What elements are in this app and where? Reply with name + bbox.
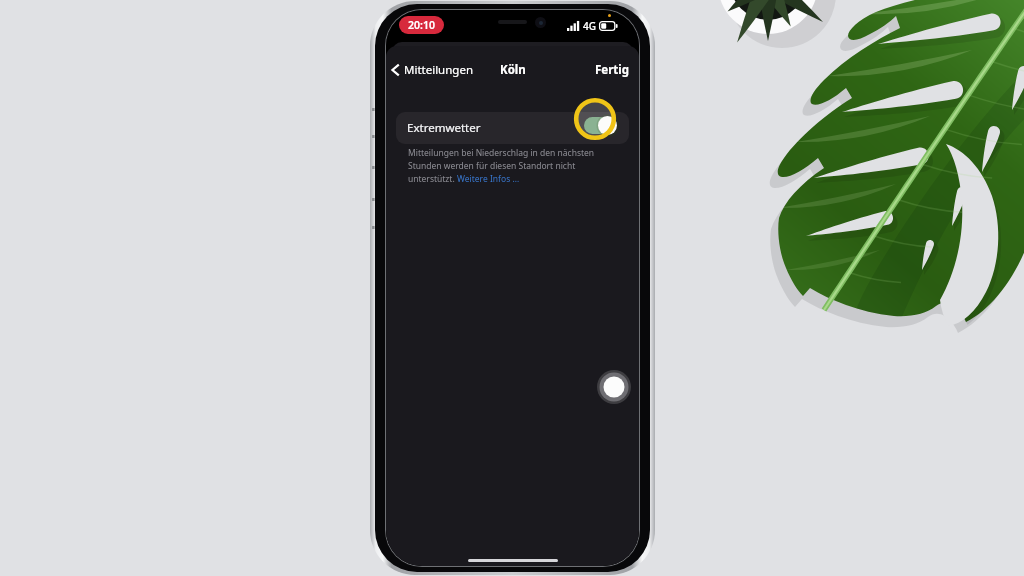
staticText: unterstützt.: [408, 173, 457, 185]
staticText: Extremwetter: [407, 120, 481, 136]
button[interactable]: Fertig: [595, 62, 630, 78]
other: Berührungspunkt: [596, 369, 632, 405]
button[interactable]: Zurück: [390, 62, 473, 78]
staticText: Stunden werden für diesen Standort nicht: [408, 160, 576, 172]
other: Zurück: [390, 62, 401, 78]
staticText: 20:10: [408, 18, 435, 32]
button[interactable]: Extremwetter: [396, 112, 629, 144]
staticText: 4G: [583, 19, 596, 33]
staticText: Mitteilungen bei Niederschlag in den näc…: [408, 147, 595, 159]
button[interactable]: Weitere Infos …: [457, 173, 520, 185]
button[interactable]: Extremwetter Schalter: [584, 116, 618, 136]
staticText: Mitteilungen: [404, 62, 473, 78]
staticText: Köln: [500, 62, 526, 78]
